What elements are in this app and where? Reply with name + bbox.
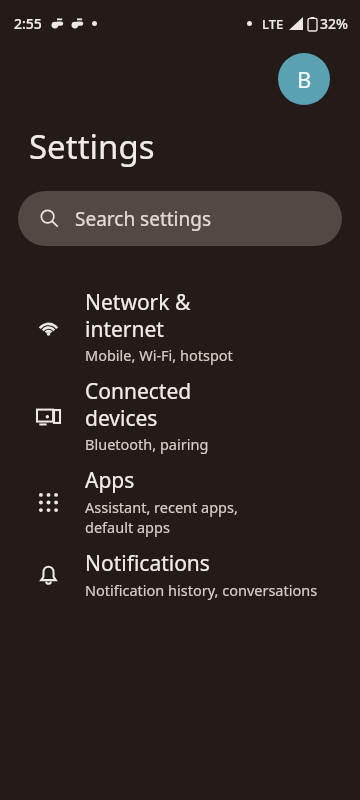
staticText: Notifications — [85, 549, 210, 578]
staticText: Bluetooth, pairing — [85, 434, 209, 454]
button[interactable]: Notifications — [0, 543, 360, 606]
button[interactable]: Account — [278, 53, 330, 105]
button[interactable]: Apps — [0, 460, 360, 543]
staticText: B — [297, 64, 312, 94]
staticText: Assistant, recent apps, default apps — [85, 497, 238, 537]
button[interactable]: Network & internet — [0, 282, 360, 371]
staticText: Search settings — [75, 206, 212, 232]
staticText: Network & internet — [85, 288, 191, 343]
staticText: Apps — [85, 466, 135, 495]
staticText: Settings — [29, 124, 155, 169]
staticText: Connected devices — [85, 377, 192, 432]
button[interactable]: Search settings — [18, 191, 342, 246]
staticText: LTE — [262, 15, 284, 33]
staticText: 2:55 — [14, 14, 42, 33]
staticText: Mobile, Wi-Fi, hotspot — [85, 345, 233, 365]
button[interactable]: Connected devices — [0, 371, 360, 460]
staticText: 32% — [320, 14, 348, 33]
staticText: Notification history, conversations — [85, 580, 318, 600]
